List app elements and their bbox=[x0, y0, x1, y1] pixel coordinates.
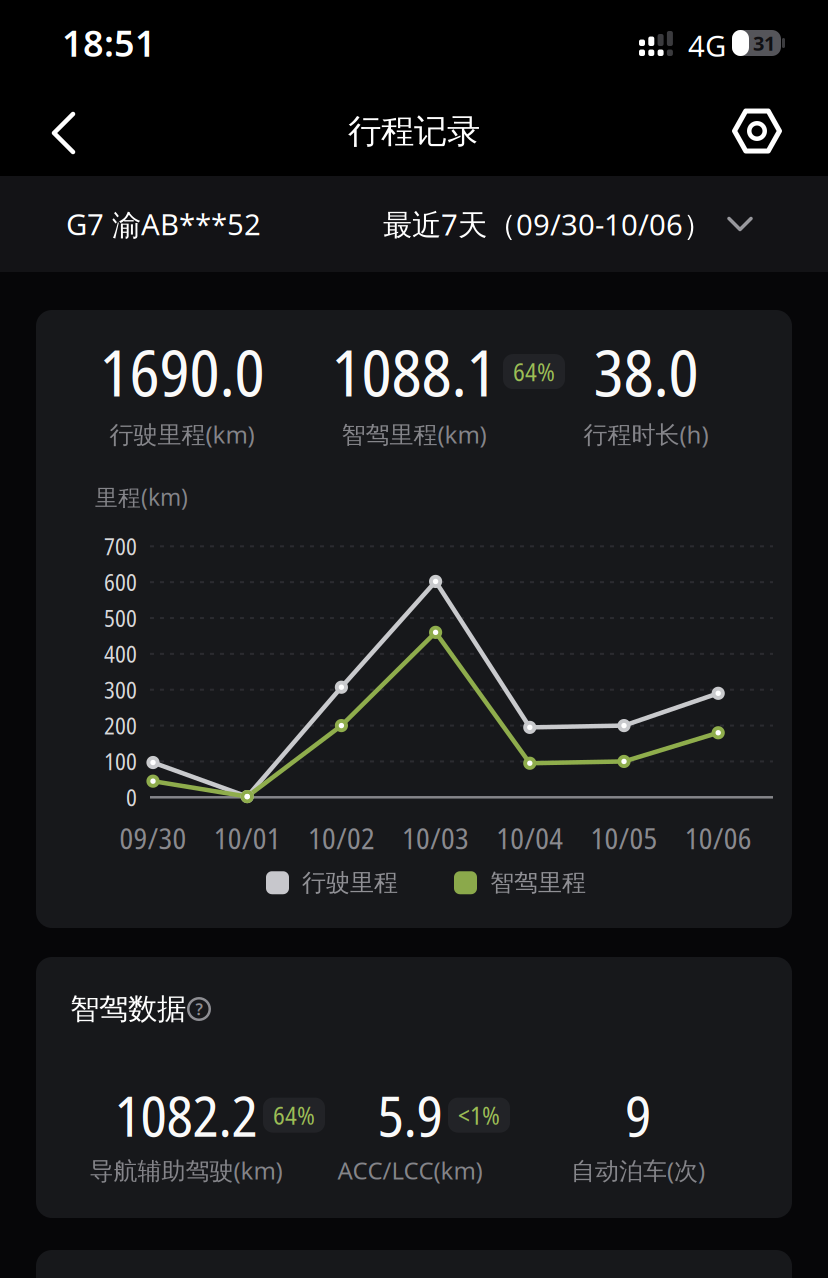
staticText: 64% bbox=[513, 355, 555, 389]
staticText: <1% bbox=[458, 1098, 500, 1132]
staticText: 500 bbox=[104, 602, 137, 634]
staticText: 9 bbox=[625, 1077, 651, 1153]
staticText: 10/02 bbox=[308, 818, 375, 858]
staticText: 行驶里程(km) bbox=[109, 418, 254, 450]
staticText: ACC/LCC(km) bbox=[337, 1154, 482, 1186]
staticText: 行程时长(h) bbox=[583, 418, 708, 450]
staticText: 64% bbox=[273, 1098, 315, 1132]
staticText: 200 bbox=[104, 710, 137, 741]
staticText: 10/03 bbox=[402, 818, 469, 858]
staticText: 行程记录 bbox=[348, 111, 480, 152]
staticText: 1690.0 bbox=[99, 328, 264, 415]
staticText: ? bbox=[195, 998, 202, 1020]
staticText: 100 bbox=[104, 746, 137, 777]
staticText: 38.0 bbox=[593, 328, 698, 415]
staticText: 智驾里程 bbox=[490, 868, 586, 897]
staticText: 里程(km) bbox=[95, 482, 188, 512]
staticText: 智驾数据 bbox=[70, 991, 186, 1027]
staticText: 导航辅助驾驶(km) bbox=[89, 1154, 282, 1186]
staticText: 1082.2 bbox=[114, 1077, 257, 1153]
staticText: 自动泊车(次) bbox=[571, 1154, 705, 1186]
staticText: G7 渝AB***52 bbox=[66, 204, 261, 243]
staticText: 18:51 bbox=[62, 19, 156, 67]
button[interactable]: Settings bbox=[733, 88, 781, 162]
staticText: 0 bbox=[126, 782, 137, 813]
button[interactable]: 智驾数据说明 bbox=[187, 997, 211, 1021]
staticText: 600 bbox=[104, 566, 137, 598]
staticText: 400 bbox=[104, 638, 137, 669]
staticText: 1088.1 bbox=[331, 328, 496, 415]
staticText: 10/06 bbox=[685, 818, 752, 858]
staticText: 5.9 bbox=[377, 1077, 442, 1153]
staticText: 4G bbox=[688, 26, 726, 65]
staticText: 行驶里程 bbox=[302, 868, 398, 897]
staticText: 10/05 bbox=[590, 818, 657, 858]
button[interactable]: 最近7天（09/30-10/06） bbox=[383, 204, 828, 243]
staticText: 31 bbox=[753, 30, 775, 56]
staticText: 300 bbox=[104, 674, 137, 705]
staticText: 10/04 bbox=[496, 818, 563, 858]
staticText: 09/30 bbox=[119, 818, 186, 858]
staticText: 最近7天（09/30-10/06） bbox=[383, 204, 712, 243]
staticText: 智驾里程(km) bbox=[341, 418, 486, 450]
staticText: 10/01 bbox=[214, 818, 281, 858]
staticText: 700 bbox=[104, 531, 137, 562]
button[interactable]: Back bbox=[0, 88, 96, 164]
button[interactable]: G7 渝AB***52 bbox=[0, 204, 261, 243]
